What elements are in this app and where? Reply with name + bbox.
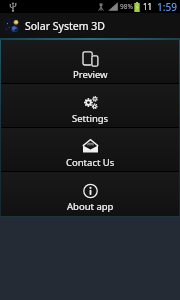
staticText: Contact Us — [66, 156, 115, 169]
staticText: Settings — [72, 112, 109, 125]
button[interactable]: Contact Us — [1, 128, 179, 171]
staticText: Preview — [73, 68, 108, 81]
button[interactable]: About app — [1, 172, 179, 216]
staticText: 11 — [143, 1, 153, 12]
staticText: Solar System 3D — [25, 19, 105, 33]
button[interactable]: Settings — [1, 84, 179, 127]
staticText: 1:59 — [157, 0, 177, 13]
staticText: 98% — [120, 2, 133, 11]
button[interactable]: Preview — [1, 40, 179, 83]
staticText: About app — [67, 200, 114, 213]
